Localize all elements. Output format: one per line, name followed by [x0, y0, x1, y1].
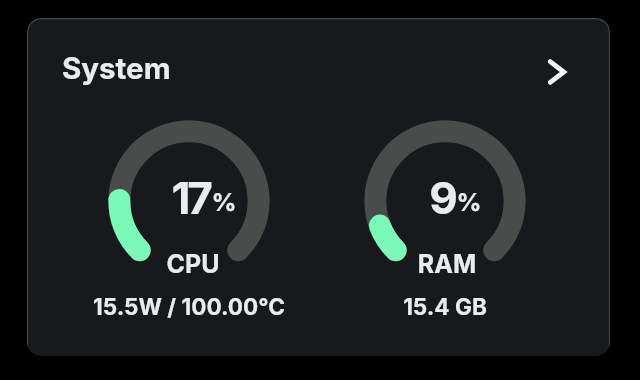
staticText: 17 [171, 171, 210, 224]
staticText: 15.4 GB [295, 293, 595, 320]
staticText: 9 [429, 171, 455, 224]
staticText: RAM [297, 249, 597, 279]
staticText: System [62, 50, 171, 86]
staticText: % [211, 187, 237, 217]
staticText: CPU [43, 249, 343, 279]
staticText: % [456, 187, 482, 217]
button[interactable]: Open system details [526, 41, 588, 103]
staticText: 15.5W / 100.00°C [39, 293, 339, 320]
